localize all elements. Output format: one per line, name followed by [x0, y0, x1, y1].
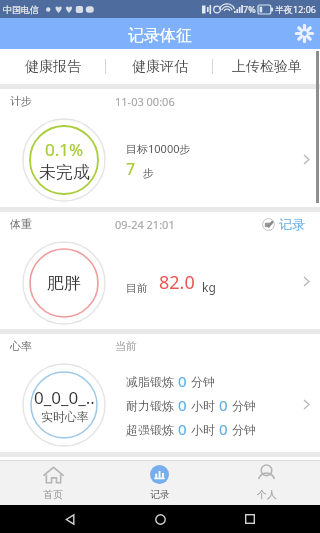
button[interactable]: Recent apps [230, 505, 270, 533]
staticText: 7% [243, 3, 256, 15]
staticText: 半夜12:06 [275, 3, 317, 15]
staticText: 记录 [279, 216, 305, 232]
staticText: 首页 [43, 488, 63, 501]
button[interactable]: 记录 [262, 216, 310, 232]
staticText: 0_0_0_.. [34, 386, 95, 409]
staticText: 超强锻炼 [126, 422, 174, 437]
staticText: 健康报告 [25, 58, 81, 76]
staticText: 小时 [191, 422, 215, 437]
staticText: 未完成 [39, 162, 90, 183]
staticText: 0.1% [45, 138, 84, 161]
staticText: 0 [219, 419, 228, 439]
button[interactable]: 健康评估 [106, 49, 213, 84]
staticText: 0 [178, 395, 187, 415]
staticText: 目标10000步 [126, 141, 191, 156]
button[interactable]: 健康报告 [0, 49, 106, 84]
staticText: 减脂锻炼 [126, 374, 174, 389]
staticText: 分钟 [191, 374, 215, 389]
staticText: 分钟 [232, 422, 256, 437]
button[interactable]: Back [50, 505, 90, 533]
staticText: 肥胖 [47, 273, 81, 294]
staticText: 记录体征 [128, 26, 192, 46]
button[interactable]: 上传检验单 [213, 49, 320, 84]
staticText: kg [202, 279, 216, 295]
button[interactable]: 首页 [0, 461, 106, 505]
button[interactable]: 计步 [0, 89, 320, 207]
staticText: 耐力锻炼 [126, 398, 174, 413]
staticText: 个人 [257, 488, 277, 501]
staticText: 82.0 [159, 270, 195, 295]
staticText: 09-24 21:01 [115, 217, 175, 232]
button[interactable]: 记录 [106, 461, 213, 505]
staticText: 当前 [115, 339, 137, 353]
staticText: 心率 [10, 339, 32, 353]
staticText: 小时 [191, 398, 215, 413]
staticText: 0 [219, 395, 228, 415]
button[interactable]: 体重 [0, 212, 320, 329]
staticText: 实时心率 [41, 409, 89, 424]
staticText: 计步 [10, 94, 32, 108]
staticText: 0 [178, 371, 187, 391]
button[interactable]: Home [140, 505, 180, 533]
staticText: 分钟 [232, 398, 256, 413]
staticText: 体重 [10, 217, 32, 231]
button[interactable]: Settings [289, 18, 320, 49]
staticText: 步 [143, 166, 154, 180]
staticText: 7 [126, 158, 136, 180]
staticText: 0 [178, 419, 187, 439]
staticText: 上传检验单 [232, 58, 302, 76]
staticText: 中国电信 [3, 4, 39, 15]
staticText: 记录 [150, 488, 170, 501]
staticText: 目前 [126, 281, 148, 295]
staticText: 健康评估 [132, 58, 188, 76]
button[interactable]: 心率 [0, 334, 320, 452]
button[interactable]: 个人 [213, 461, 320, 505]
staticText: 11-03 00:06 [115, 94, 175, 109]
